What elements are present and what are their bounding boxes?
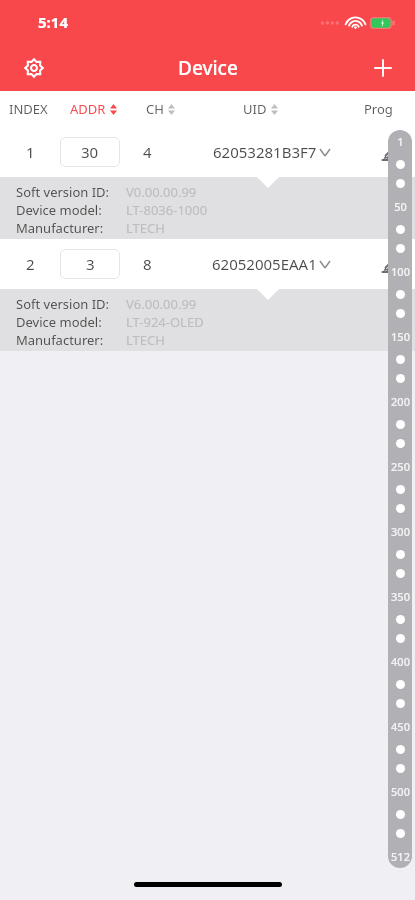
staticText: 62053281B3F7 (213, 142, 317, 162)
button[interactable]: ADDR (70, 100, 117, 118)
staticText: V0.00.00.99 (126, 183, 197, 201)
staticText: UID (243, 100, 267, 118)
staticText: 5:14 (38, 12, 68, 32)
button[interactable]: INDEX (9, 100, 48, 118)
staticText: 1 (26, 142, 35, 162)
button[interactable]: Add device (363, 48, 403, 88)
staticText: 50 (394, 199, 407, 214)
staticText: 512 (391, 849, 410, 864)
staticText: 100 (391, 264, 410, 279)
staticText: LT-8036-1000 (126, 201, 208, 219)
button[interactable]: CH (146, 100, 175, 118)
button[interactable]: Prog (364, 100, 393, 118)
staticText: 62052005EAA1 (212, 254, 317, 274)
staticText: 150 (391, 329, 410, 344)
staticText: 500 (391, 784, 410, 799)
staticText: V6.00.00.99 (126, 295, 197, 313)
button[interactable]: Address index scrubber (388, 130, 412, 868)
staticText: Soft version ID: (16, 295, 110, 313)
staticText: 1 (397, 134, 404, 149)
staticText: 200 (391, 394, 410, 409)
staticText: 250 (391, 459, 410, 474)
staticText: Device (178, 55, 238, 81)
staticText: 3 (86, 254, 95, 274)
staticText: Soft version ID: (16, 183, 110, 201)
staticText: Device model: (16, 201, 102, 219)
staticText: 30 (81, 142, 99, 162)
staticText: 4 (143, 142, 152, 162)
staticText: 300 (391, 524, 410, 539)
staticText: LTECH (126, 331, 165, 349)
staticText: Manufacturer: (16, 219, 104, 237)
button[interactable]: 1 (0, 127, 415, 177)
button[interactable]: UID (243, 100, 278, 118)
staticText: CH (146, 100, 164, 118)
button[interactable]: Edit device (363, 127, 415, 177)
staticText: Manufacturer: (16, 331, 104, 349)
staticText: ADDR (70, 100, 106, 118)
button[interactable]: Edit device (363, 239, 415, 289)
staticText: 350 (391, 589, 410, 604)
staticText: LTECH (126, 219, 165, 237)
staticText: 2 (26, 254, 35, 274)
staticText: LT-924-OLED (126, 313, 204, 331)
button[interactable]: Settings (14, 48, 54, 88)
button[interactable]: 2 (0, 239, 415, 289)
staticText: 400 (391, 654, 410, 669)
staticText: 450 (391, 719, 410, 734)
staticText: 8 (143, 254, 152, 274)
staticText: Device model: (16, 313, 102, 331)
